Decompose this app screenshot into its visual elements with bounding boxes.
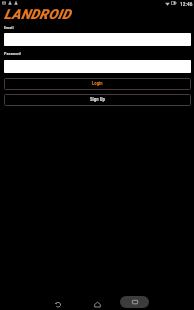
staticText: 12:46 bbox=[180, 1, 193, 7]
staticText: Email bbox=[4, 25, 14, 30]
button[interactable]: Back bbox=[48, 294, 68, 310]
button[interactable]: Sign Up bbox=[4, 94, 191, 106]
staticText: LANDROID bbox=[4, 6, 71, 22]
button[interactable]: Login bbox=[4, 78, 191, 90]
staticText: Sign Up bbox=[90, 97, 105, 103]
staticText: Password bbox=[4, 51, 21, 56]
button[interactable]: Home bbox=[87, 294, 107, 310]
button[interactable]: Recent apps bbox=[120, 296, 149, 308]
button[interactable]: LANDROID bbox=[4, 6, 71, 22]
staticText: Login bbox=[92, 81, 103, 87]
